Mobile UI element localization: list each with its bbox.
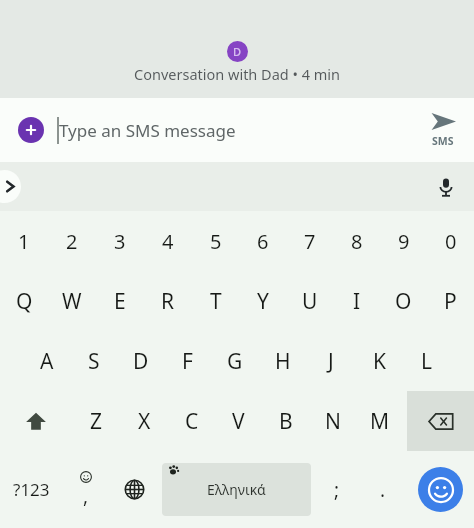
button[interactable]: W: [48, 271, 96, 331]
button[interactable]: G: [211, 331, 259, 391]
button[interactable]: D: [117, 331, 164, 391]
button[interactable]: Send SMS: [412, 98, 474, 162]
staticText: 7: [304, 228, 316, 255]
button[interactable]: 3: [96, 211, 144, 271]
staticText: M: [370, 407, 390, 436]
button[interactable]: Backspace: [407, 391, 474, 451]
button[interactable]: K: [355, 331, 403, 391]
button[interactable]: Expand toolbar: [0, 170, 21, 203]
button[interactable]: Y: [239, 271, 286, 331]
staticText: 3: [114, 228, 126, 255]
staticText: B: [279, 407, 293, 436]
button[interactable]: S: [70, 331, 117, 391]
staticText: F: [182, 347, 193, 376]
staticText: J: [328, 347, 334, 376]
staticText: U: [302, 287, 318, 316]
button[interactable]: H: [259, 331, 307, 391]
staticText: 4: [162, 228, 174, 255]
staticText: W: [62, 287, 82, 316]
staticText: D: [133, 347, 149, 376]
button[interactable]: ;: [314, 451, 360, 528]
button[interactable]: A: [23, 331, 70, 391]
staticText: Conversation with Dad • 4 min: [134, 64, 341, 84]
button[interactable]: 8: [333, 211, 380, 271]
staticText: P: [444, 287, 457, 316]
button[interactable]: X: [120, 391, 168, 451]
button[interactable]: C: [168, 391, 215, 451]
staticText: 2: [66, 228, 78, 255]
staticText: 1: [18, 228, 30, 255]
staticText: L: [421, 347, 433, 376]
staticText: SMS: [432, 134, 454, 148]
staticText: 5: [210, 228, 222, 255]
button[interactable]: P: [427, 271, 474, 331]
button[interactable]: U: [286, 271, 333, 331]
staticText: T: [210, 287, 222, 316]
staticText: 6: [257, 228, 269, 255]
staticText: Q: [16, 287, 33, 316]
staticText: N: [325, 407, 341, 436]
button[interactable]: 9: [380, 211, 427, 271]
button[interactable]: 7: [286, 211, 333, 271]
button[interactable]: O: [380, 271, 427, 331]
staticText: 9: [398, 228, 410, 255]
staticText: I: [353, 287, 361, 316]
staticText: Type an SMS message: [59, 119, 236, 142]
staticText: V: [232, 407, 245, 436]
button[interactable]: ,: [63, 451, 109, 528]
staticText: K: [373, 347, 386, 376]
staticText: G: [227, 347, 243, 376]
button[interactable]: 1: [0, 211, 48, 271]
staticText: 0: [445, 228, 457, 255]
button[interactable]: M: [356, 391, 403, 451]
button[interactable]: F: [164, 331, 211, 391]
button[interactable]: N: [309, 391, 356, 451]
button[interactable]: I: [333, 271, 380, 331]
button[interactable]: Emoji: [406, 451, 474, 528]
button[interactable]: 6: [239, 211, 286, 271]
staticText: X: [138, 407, 151, 436]
staticText: A: [40, 347, 54, 376]
button[interactable]: 2: [48, 211, 96, 271]
staticText: .: [380, 477, 386, 503]
button[interactable]: 0: [427, 211, 474, 271]
button[interactable]: Voice input: [429, 170, 463, 204]
button[interactable]: 4: [144, 211, 192, 271]
staticText: 8: [351, 228, 363, 255]
staticText: O: [395, 287, 412, 316]
button[interactable]: .: [360, 451, 406, 528]
staticText: Y: [257, 287, 269, 316]
button[interactable]: Z: [72, 391, 120, 451]
button[interactable]: Change keyboard language: [109, 451, 159, 528]
button[interactable]: Add attachment: [13, 112, 49, 148]
staticText: H: [275, 347, 291, 376]
button[interactable]: L: [403, 331, 451, 391]
staticText: E: [114, 287, 126, 316]
button[interactable]: Q: [0, 271, 48, 331]
staticText: ;: [334, 477, 340, 503]
staticText: R: [161, 287, 175, 316]
button[interactable]: B: [262, 391, 309, 451]
staticText: ?123: [13, 478, 50, 501]
button[interactable]: J: [307, 331, 355, 391]
button[interactable]: E: [96, 271, 144, 331]
button[interactable]: R: [144, 271, 192, 331]
staticText: D: [233, 44, 242, 59]
staticText: S: [88, 347, 100, 376]
staticText: ,: [83, 483, 89, 509]
button[interactable]: Ελληνικά: [162, 463, 311, 516]
staticText: C: [185, 407, 199, 436]
staticText: Ελληνικά: [207, 480, 266, 499]
button[interactable]: Type an SMS message: [57, 98, 412, 162]
button[interactable]: V: [215, 391, 262, 451]
staticText: Z: [90, 407, 103, 436]
button[interactable]: ?123: [0, 451, 63, 528]
button[interactable]: Shift: [0, 391, 72, 451]
button[interactable]: T: [192, 271, 239, 331]
button[interactable]: 5: [192, 211, 239, 271]
